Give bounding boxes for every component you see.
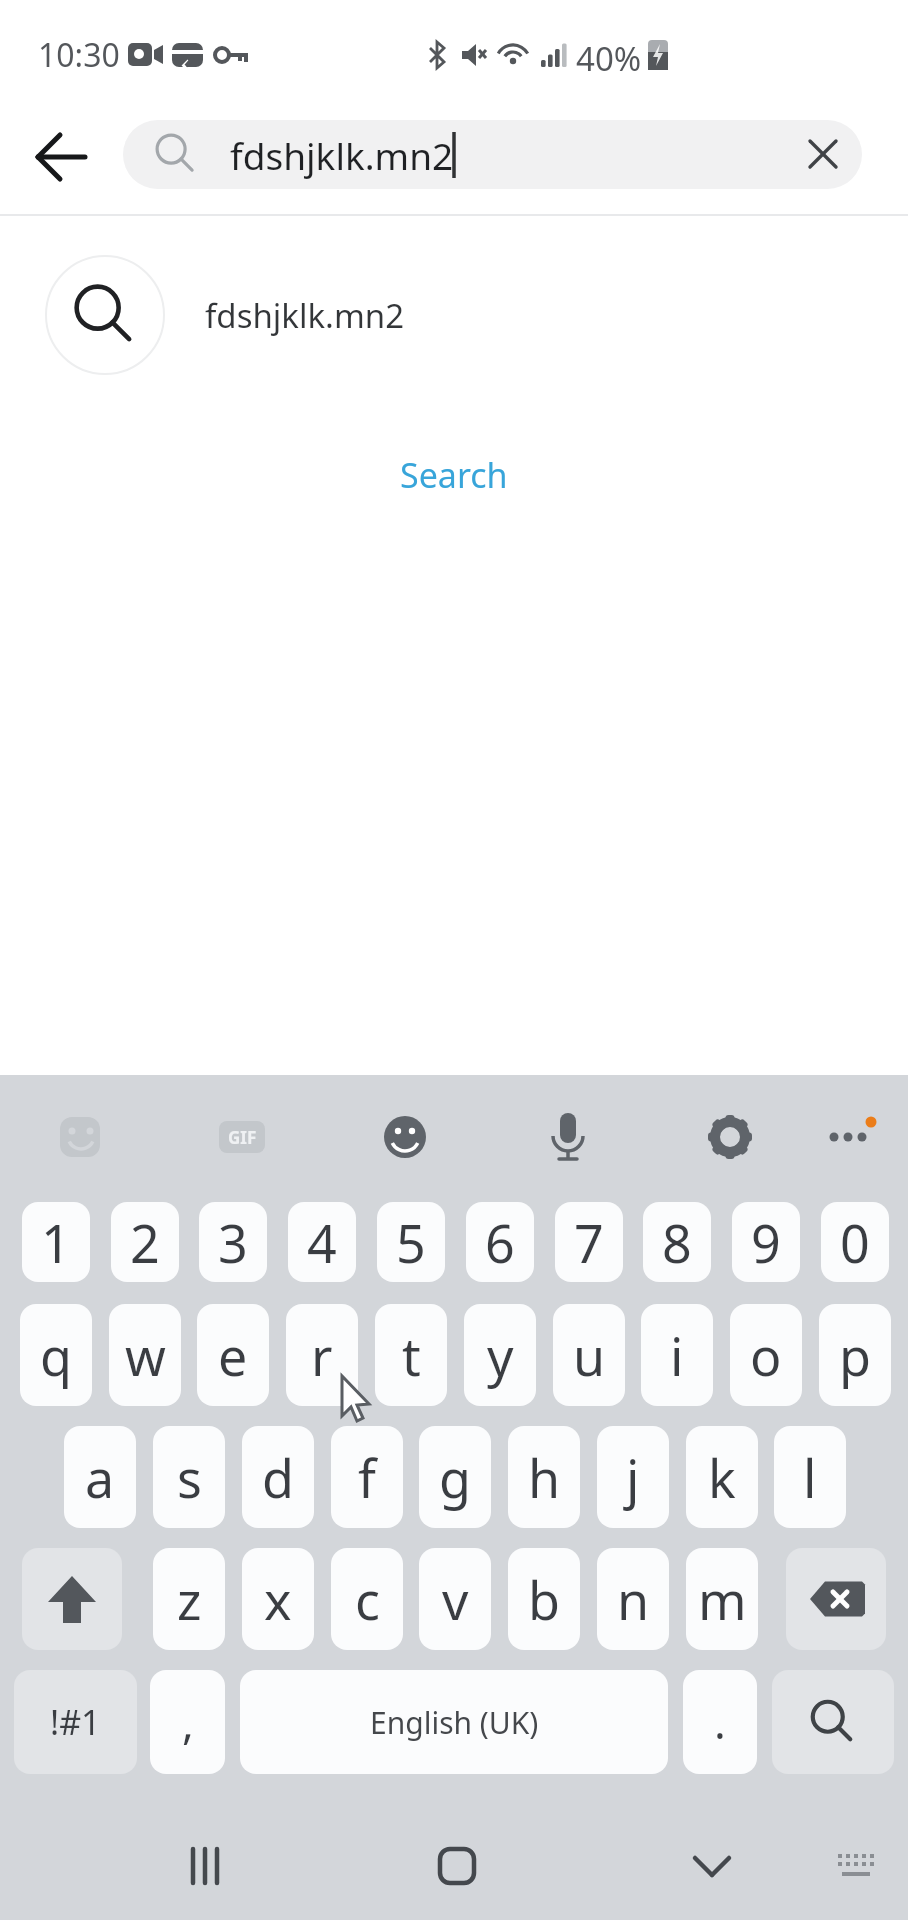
staticText: t: [402, 1320, 421, 1391]
staticText: a: [85, 1442, 115, 1513]
staticText: GIF: [228, 1126, 257, 1149]
button[interactable]: p: [819, 1304, 891, 1406]
staticText: m: [698, 1564, 747, 1635]
staticText: 1: [41, 1207, 71, 1278]
button[interactable]: fdshjklk.mn2: [0, 235, 908, 395]
staticText: .: [714, 1692, 726, 1752]
button[interactable]: c: [331, 1548, 403, 1650]
button[interactable]: k: [686, 1426, 758, 1528]
button[interactable]: o: [730, 1304, 802, 1406]
button[interactable]: 4: [288, 1202, 356, 1282]
button[interactable]: 2: [111, 1202, 179, 1282]
button[interactable]: e: [197, 1304, 269, 1406]
staticText: p: [839, 1320, 871, 1391]
staticText: English (UK): [370, 1702, 539, 1743]
button[interactable]: !#1: [14, 1670, 137, 1774]
button[interactable]: q: [20, 1304, 92, 1406]
button[interactable]: 7: [555, 1202, 623, 1282]
button[interactable]: 0: [821, 1202, 889, 1282]
button[interactable]: [375, 1107, 435, 1167]
button[interactable]: [700, 1107, 760, 1167]
staticText: 0: [840, 1207, 870, 1278]
staticText: i: [670, 1320, 684, 1391]
staticText: Search: [400, 452, 508, 498]
button[interactable]: f: [331, 1426, 403, 1528]
staticText: r: [311, 1320, 333, 1391]
button[interactable]: [50, 1107, 110, 1167]
button[interactable]: w: [109, 1304, 181, 1406]
staticText: h: [528, 1442, 561, 1513]
staticText: !#1: [50, 1699, 101, 1745]
staticText: 40%: [576, 36, 642, 76]
staticText: s: [177, 1442, 202, 1513]
button[interactable]: y: [464, 1304, 536, 1406]
button[interactable]: m: [686, 1548, 758, 1650]
staticText: 10:30: [38, 33, 120, 77]
button[interactable]: [667, 1821, 757, 1911]
staticText: n: [617, 1564, 650, 1635]
button[interactable]: 8: [643, 1202, 711, 1282]
staticText: u: [573, 1320, 606, 1391]
button[interactable]: 3: [199, 1202, 267, 1282]
button[interactable]: .: [683, 1670, 757, 1774]
button[interactable]: ,: [150, 1670, 225, 1774]
button[interactable]: 6: [466, 1202, 534, 1282]
button[interactable]: English (UK): [240, 1670, 668, 1774]
staticText: z: [177, 1564, 202, 1635]
staticText: 4: [307, 1207, 337, 1278]
button[interactable]: [212, 1107, 272, 1167]
button[interactable]: u: [553, 1304, 625, 1406]
button[interactable]: [772, 1670, 894, 1774]
button[interactable]: Search: [354, 445, 554, 505]
staticText: 7: [574, 1207, 604, 1278]
button[interactable]: v: [419, 1548, 491, 1650]
button[interactable]: i: [641, 1304, 713, 1406]
staticText: 2: [130, 1207, 160, 1278]
staticText: x: [264, 1564, 292, 1635]
button[interactable]: 5: [377, 1202, 445, 1282]
button[interactable]: j: [597, 1426, 669, 1528]
staticText: f: [358, 1442, 376, 1513]
button[interactable]: r: [286, 1304, 358, 1406]
button[interactable]: [412, 1821, 502, 1911]
staticText: o: [750, 1320, 782, 1391]
button[interactable]: d: [242, 1426, 314, 1528]
button[interactable]: [810, 1821, 900, 1911]
staticText: 5: [396, 1207, 426, 1278]
button[interactable]: g: [419, 1426, 491, 1528]
button[interactable]: x: [242, 1548, 314, 1650]
staticText: l: [803, 1442, 817, 1513]
button[interactable]: [22, 1548, 122, 1650]
button[interactable]: b: [508, 1548, 580, 1650]
button[interactable]: [160, 1821, 250, 1911]
staticText: j: [626, 1442, 640, 1513]
staticText: d: [262, 1442, 294, 1513]
button[interactable]: t: [375, 1304, 447, 1406]
staticText: 6: [485, 1207, 515, 1278]
button[interactable]: [818, 1107, 878, 1167]
button[interactable]: l: [774, 1426, 846, 1528]
button[interactable]: fdshjklk.mn2: [123, 120, 862, 189]
button[interactable]: 1: [22, 1202, 90, 1282]
staticText: v: [442, 1564, 469, 1635]
button[interactable]: z: [153, 1548, 225, 1650]
button[interactable]: s: [153, 1426, 225, 1528]
staticText: k: [708, 1442, 736, 1513]
button[interactable]: n: [597, 1548, 669, 1650]
button[interactable]: [20, 117, 100, 193]
staticText: y: [487, 1320, 514, 1391]
staticText: fdshjklk.mn2: [205, 293, 405, 338]
button[interactable]: [786, 1548, 886, 1650]
staticText: c: [355, 1564, 380, 1635]
staticText: 9: [751, 1207, 781, 1278]
staticText: g: [439, 1442, 471, 1513]
staticText: 3: [218, 1207, 248, 1278]
staticText: fdshjklk.mn2: [230, 130, 454, 180]
button[interactable]: a: [64, 1426, 136, 1528]
staticText: 8: [662, 1207, 692, 1278]
staticText: w: [125, 1320, 166, 1391]
button[interactable]: [538, 1107, 598, 1167]
button[interactable]: h: [508, 1426, 580, 1528]
button[interactable]: 9: [732, 1202, 800, 1282]
staticText: q: [40, 1320, 72, 1391]
